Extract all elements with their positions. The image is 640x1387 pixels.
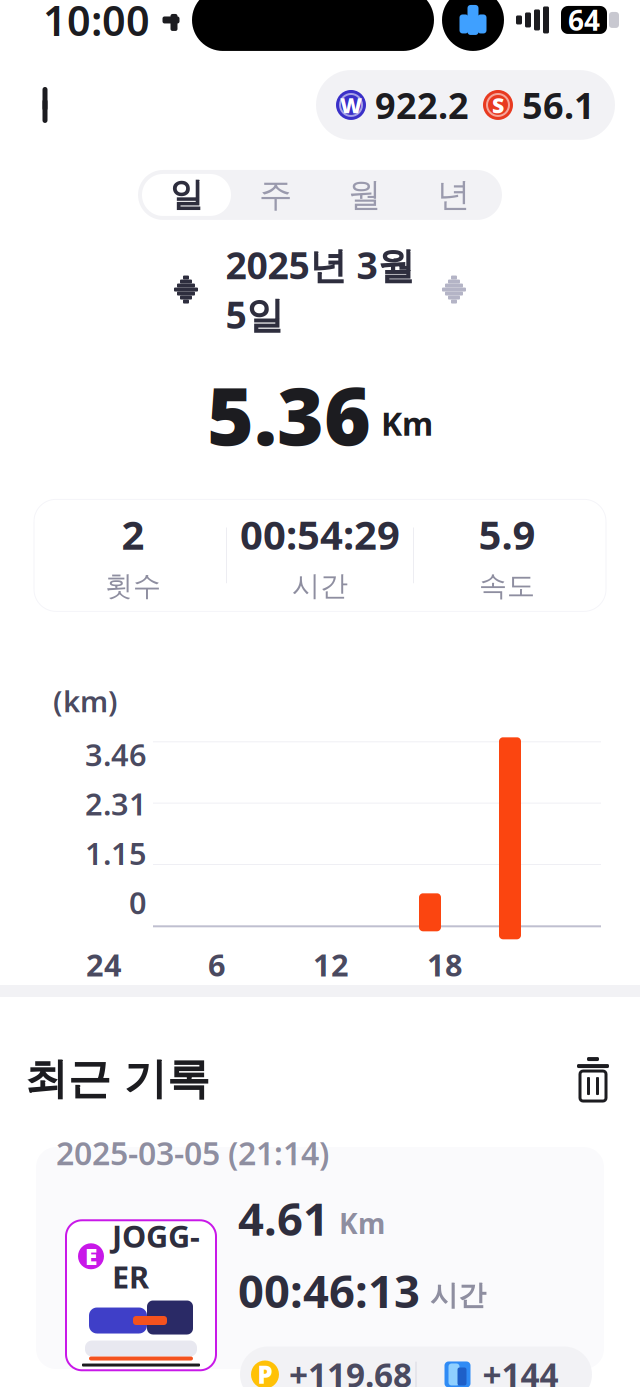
button[interactable]: W [316,70,615,140]
staticText: Km [339,1205,385,1242]
staticText: 56.1 [522,81,595,129]
staticText: 최근 기록 [25,1053,210,1105]
staticText: 시간 [292,569,348,603]
staticText: 12 [313,944,349,985]
button[interactable]: 2025-03-05 (21:14) [36,1147,604,1369]
staticText: 18 [427,944,463,985]
staticText: P [257,1358,272,1387]
staticText: JOGGER [112,1216,200,1297]
staticText: W [340,91,362,119]
staticText: 4.61 [238,1188,329,1248]
staticText: 5.9 [478,508,535,561]
staticText: 2 [121,508,144,561]
staticText: 24 [86,944,122,985]
button[interactable]: Delete records [563,1049,623,1109]
staticText: 0 [129,882,147,923]
staticText: 10:00 [43,0,150,47]
staticText: 64 [568,1,600,39]
staticText: 00:46:13 [238,1260,420,1320]
staticText: 2025년 3월 5일 [225,240,414,339]
staticText: 3.46 [85,734,147,775]
staticText: 5.36 [207,361,371,467]
button[interactable]: Back [13,73,77,137]
staticText: 2.31 [85,783,147,824]
staticText: 2025-03-05 (21:14) [56,1132,329,1174]
staticText: 00:54:29 [240,508,400,561]
staticText: 속도 [479,569,535,603]
staticText: 횟수 [105,569,161,603]
staticText: 일 [170,174,203,215]
staticText: 6 [208,944,226,985]
staticText: 주 [259,174,292,215]
staticText: 월 [348,174,381,215]
staticText: S [492,91,504,119]
staticText: +144 [482,1352,558,1387]
staticText: (km) [53,681,118,720]
staticText: 시간 [430,1278,486,1313]
staticText: 1.15 [85,833,147,873]
staticText: 922.2 [375,81,469,129]
button[interactable]: 년 [409,174,498,216]
button[interactable]: 일 [142,174,231,216]
button[interactable]: Previous day [159,265,213,313]
button[interactable]: 주 [231,174,320,216]
staticText: 년 [437,174,470,215]
button[interactable]: 월 [320,174,409,216]
staticText: +119.68 [289,1352,412,1387]
button[interactable]: Next day [427,265,481,313]
staticText: E [85,1241,97,1271]
staticText: Km [381,402,433,444]
